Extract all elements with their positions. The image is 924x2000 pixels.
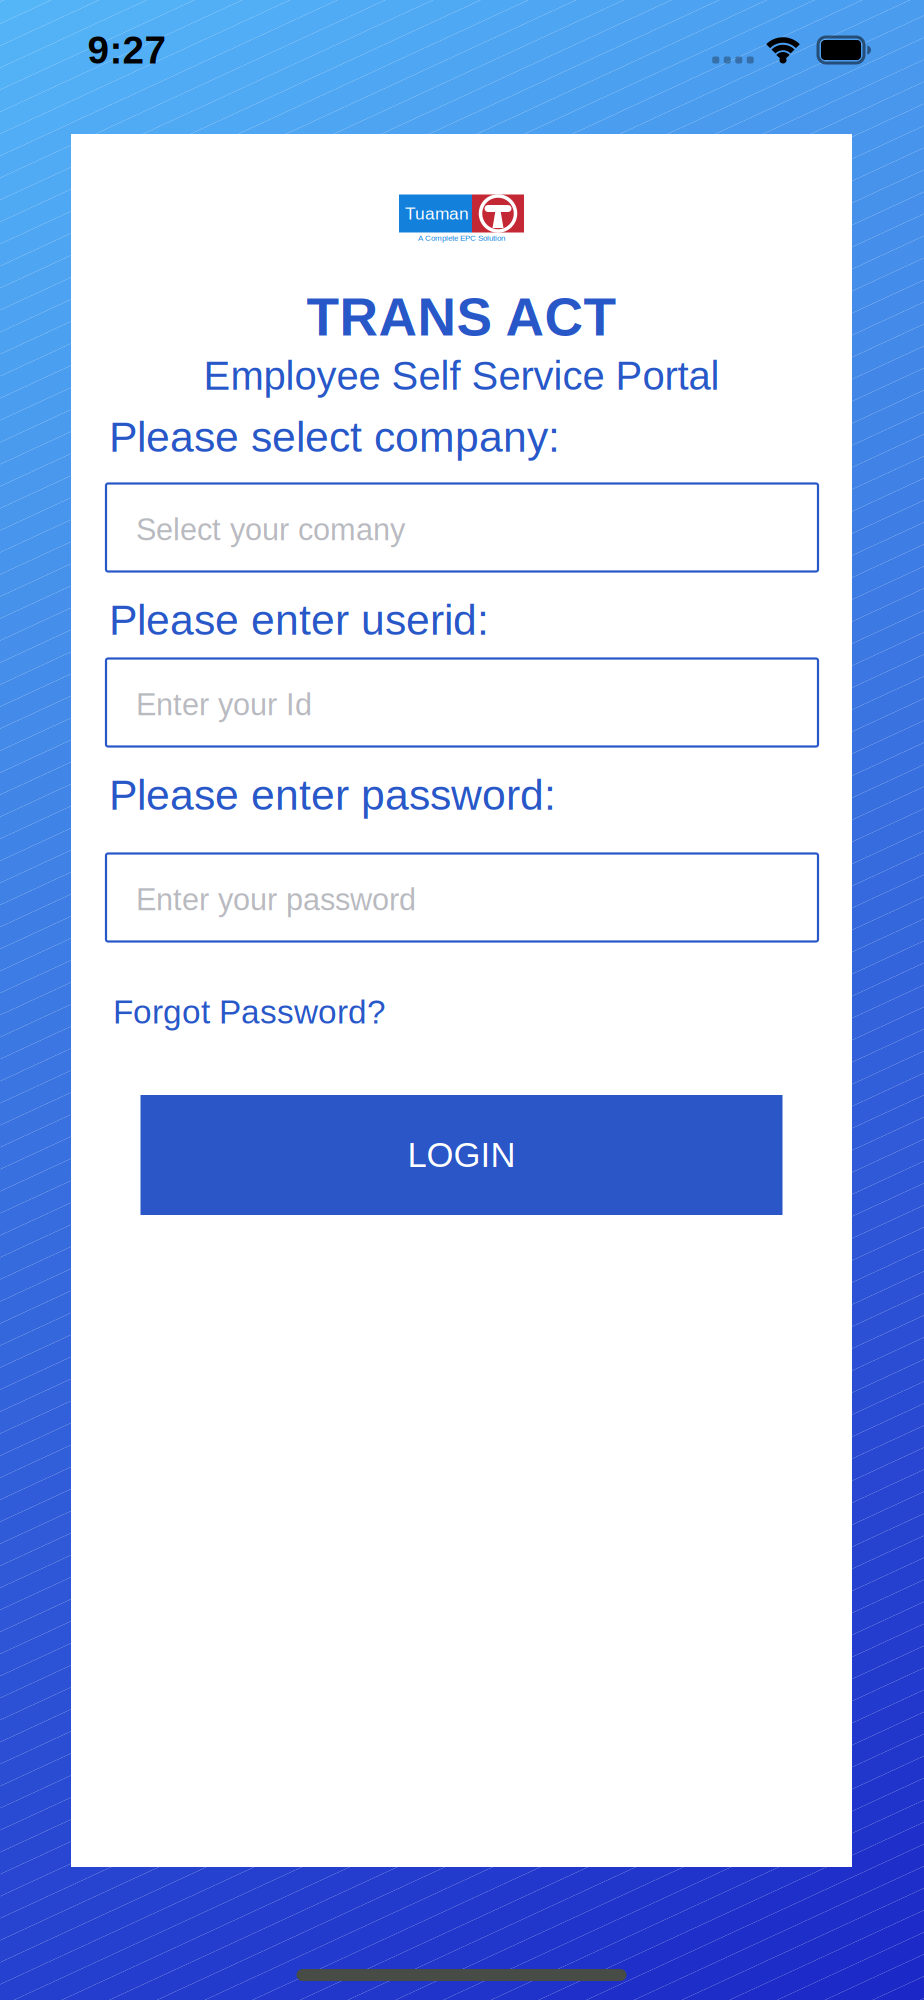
staticText: Employee Self Service Portal	[203, 354, 719, 398]
staticText: 9:27	[87, 29, 166, 71]
button[interactable]: Select your comany	[106, 483, 818, 571]
staticText: Please enter userid:	[109, 597, 489, 643]
staticText: LOGIN	[407, 1136, 515, 1174]
staticText: Tuaman	[405, 204, 469, 223]
staticText: Forgot Password?	[113, 994, 386, 1030]
staticText: TRANS ACT	[306, 288, 616, 346]
staticText: Please enter password:	[109, 772, 556, 818]
button[interactable]: LOGIN	[140, 1095, 782, 1215]
staticText: Select your comany	[136, 513, 405, 546]
button[interactable]: Enter your Id	[106, 658, 818, 746]
staticText: Please select company:	[109, 414, 560, 460]
button[interactable]: Enter your password	[106, 853, 818, 941]
button[interactable]: Forgot Password?	[71, 994, 852, 1030]
staticText: A Complete EPC Solution	[418, 234, 505, 242]
staticText: Enter your password	[136, 883, 416, 916]
staticText: Enter your Id	[136, 688, 312, 721]
